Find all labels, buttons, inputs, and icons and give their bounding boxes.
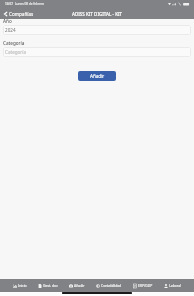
staticText: Gest. doc [43, 283, 58, 288]
staticText: Lunes 08 de febrero [15, 2, 45, 6]
staticText: Inicio [18, 283, 27, 288]
staticText: 14:57 [5, 2, 13, 6]
staticText: Laboral [169, 283, 181, 288]
staticText: Añadir [90, 73, 105, 79]
button[interactable]: Contabilidad [94, 279, 124, 292]
button[interactable]: Añadir [67, 279, 87, 292]
staticText: Categoría [3, 40, 25, 46]
button[interactable]: Categoría [3, 47, 191, 57]
button[interactable]: Añadir [78, 71, 116, 81]
other: Back [4, 12, 7, 16]
button[interactable]: 2024 [3, 25, 191, 35]
button[interactable]: Back [0, 9, 36, 19]
button[interactable]: Laboral [162, 279, 183, 292]
staticText: Añadir [74, 283, 85, 288]
button[interactable]: Inicio [11, 279, 29, 292]
staticText: ADISS KIT DIGITAL - KIT [72, 11, 123, 17]
staticText: ERP/GDP [138, 283, 153, 288]
staticText: 2024 [5, 27, 16, 33]
staticText: Año [3, 18, 12, 24]
staticText: Categoría [5, 49, 26, 55]
button[interactable]: ERP/GDP [131, 279, 155, 292]
button[interactable]: Gest. doc [36, 279, 60, 292]
staticText: Contabilidad [101, 283, 122, 288]
staticText: Compañías [9, 11, 34, 17]
